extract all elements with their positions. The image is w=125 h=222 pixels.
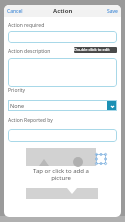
staticText: Priority — [8, 87, 26, 94]
staticText: Action description — [8, 48, 51, 55]
other: Open Priority dropdown — [107, 101, 117, 111]
button[interactable] — [8, 31, 117, 43]
button[interactable] — [8, 129, 117, 142]
staticText: Double click to edit text — [74, 47, 117, 53]
button[interactable]: Tap or click to add a picture — [26, 167, 96, 182]
staticText: Action required — [8, 22, 45, 29]
staticText: Action Reported by — [8, 117, 53, 124]
button[interactable]: Save — [107, 8, 118, 15]
staticText: Action — [53, 7, 73, 15]
button[interactable] — [8, 58, 117, 87]
button[interactable]: Cancel — [7, 8, 23, 15]
staticText: None — [10, 102, 25, 109]
button[interactable]: None — [8, 100, 117, 111]
